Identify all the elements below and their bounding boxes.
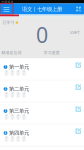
button[interactable]: 1 xyxy=(0,58,84,80)
staticText: 1 xyxy=(4,65,6,69)
staticText: 第四单元 xyxy=(9,130,29,136)
staticText: 课文 xyxy=(17,114,20,120)
staticText: 2 xyxy=(4,87,6,91)
staticText: 课文 xyxy=(5,114,8,120)
staticText: 课文 xyxy=(17,136,20,142)
staticText: 课文 xyxy=(11,92,14,98)
staticText: 3 xyxy=(4,109,6,113)
staticText: 课文 xyxy=(17,92,20,98)
staticText: 课文 xyxy=(5,70,8,76)
button[interactable]: 3 xyxy=(0,102,84,124)
staticText: 课文 xyxy=(22,92,25,98)
button[interactable]: 2 xyxy=(0,80,84,102)
staticText: 课文 xyxy=(22,114,25,120)
button[interactable]: 学习进度 xyxy=(44,50,60,55)
staticText: 课文 xyxy=(17,70,20,76)
staticText: 4 xyxy=(4,131,6,135)
staticText: 课文 xyxy=(11,70,14,76)
staticText: 课文 xyxy=(5,136,8,142)
staticText: 课文 xyxy=(22,136,25,142)
staticText: 语文 | 七年级上册 xyxy=(22,5,62,13)
staticText: 第二单元 xyxy=(9,86,29,92)
staticText: 0 xyxy=(36,20,48,49)
staticText: 第一单元 xyxy=(9,64,29,70)
staticText: 已学习 xyxy=(2,20,14,25)
staticText: 课文 xyxy=(5,92,8,98)
staticText: 学习进度 xyxy=(44,50,60,55)
staticText: 精准定位词 xyxy=(2,50,22,55)
button[interactable]: 4 xyxy=(0,124,84,146)
staticText: 第三单元 xyxy=(9,108,29,114)
button[interactable]: Account xyxy=(73,4,84,14)
button[interactable]: 精准定位词 xyxy=(0,50,22,55)
button[interactable]: Menu xyxy=(0,4,13,14)
staticText: 课文 xyxy=(22,70,25,76)
staticText: /238个 xyxy=(70,29,81,35)
staticText: 中国移动 xyxy=(1,0,13,3)
staticText: 课文 xyxy=(11,136,14,142)
staticText: 课文 xyxy=(11,114,14,120)
